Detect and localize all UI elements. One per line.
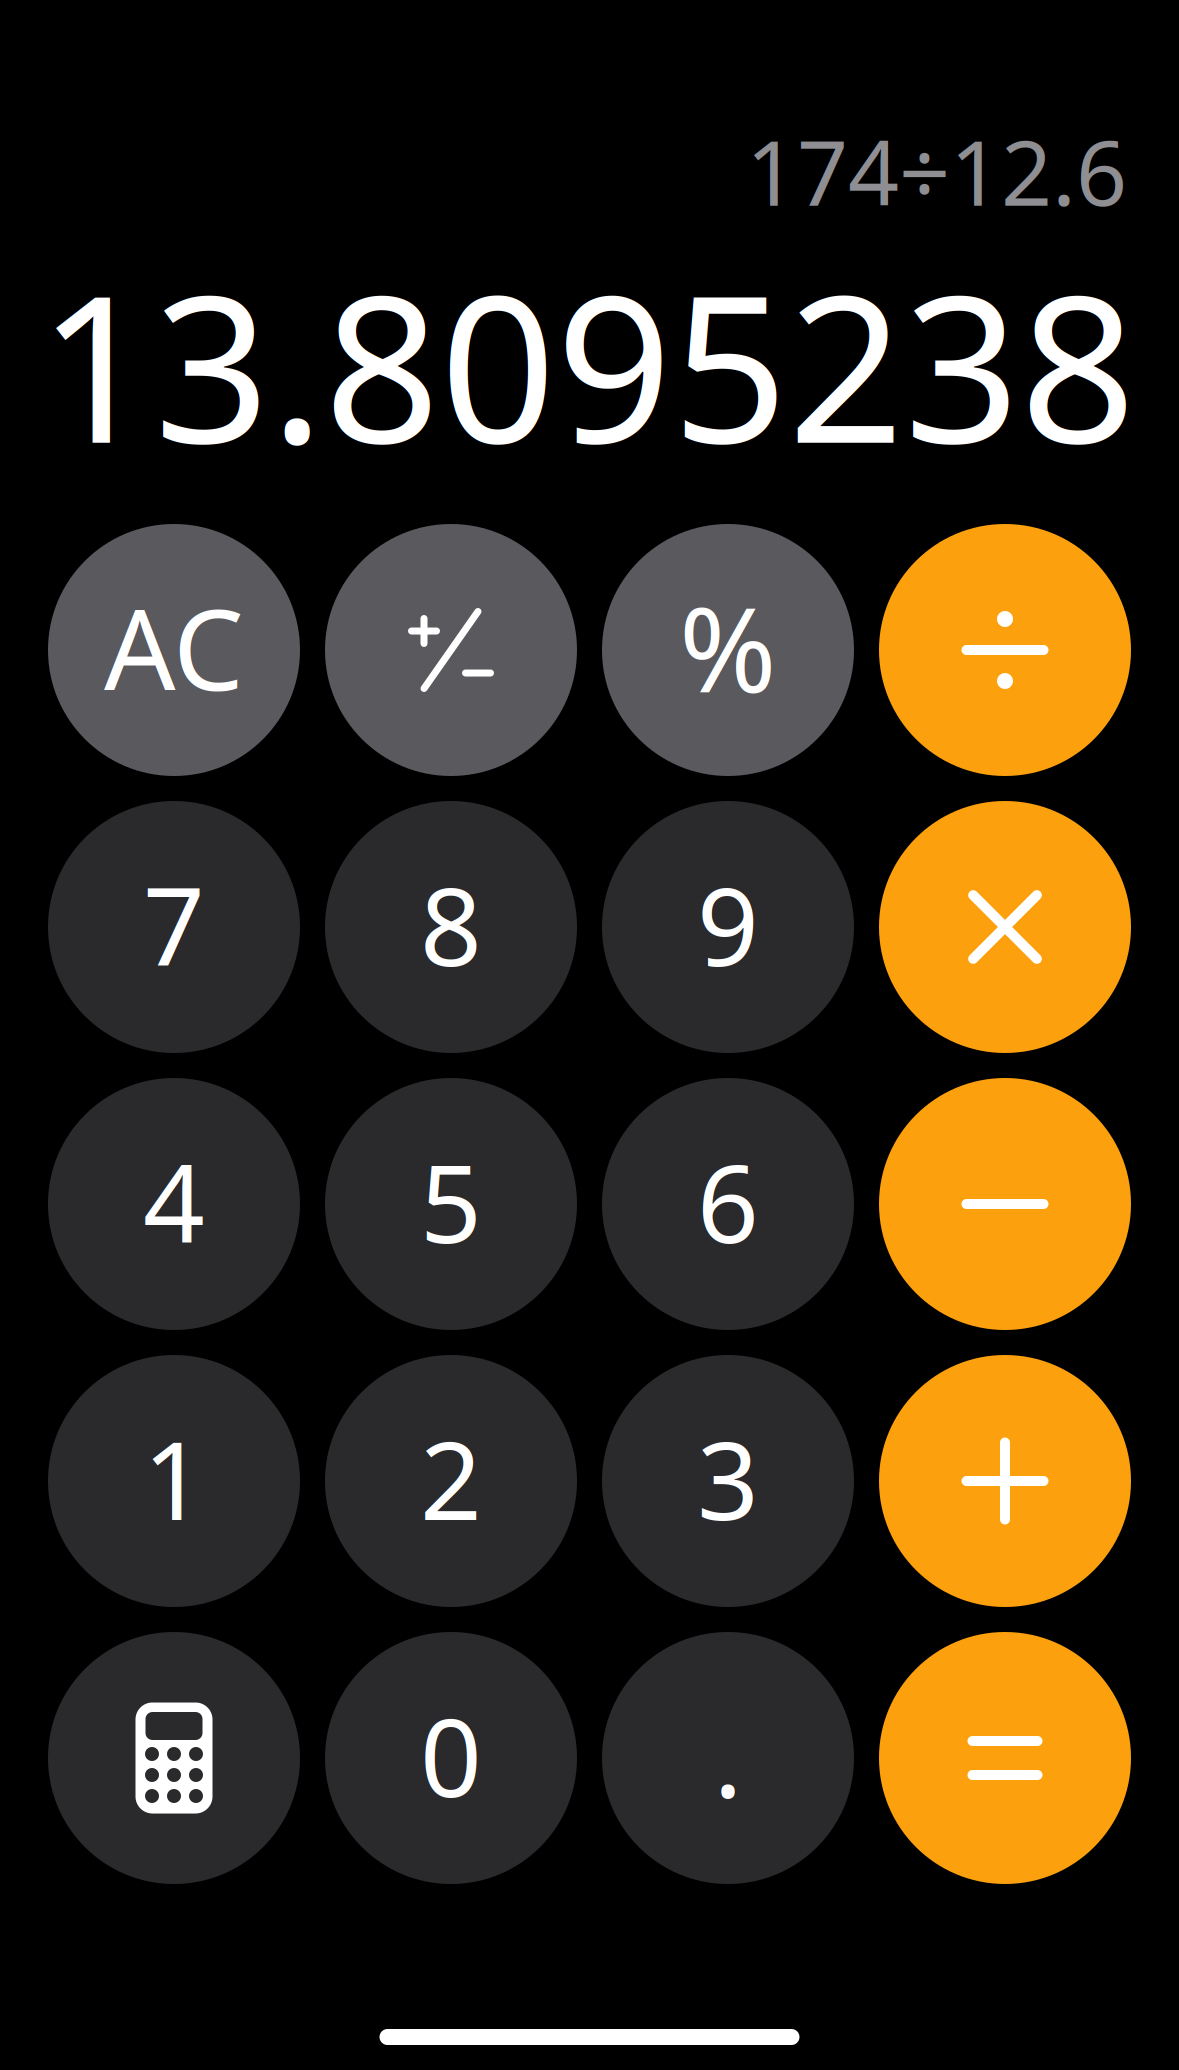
staticText: 13.8095238 bbox=[38, 229, 1136, 498]
staticText: 1 bbox=[143, 1406, 205, 1550]
button[interactable]: Subtract bbox=[879, 1078, 1131, 1330]
button[interactable]: 2 bbox=[325, 1355, 577, 1607]
staticText: % bbox=[679, 569, 777, 725]
button[interactable]: Equals bbox=[879, 1632, 1131, 1884]
button[interactable]: Add bbox=[879, 1355, 1131, 1607]
button[interactable]: 0 bbox=[325, 1632, 577, 1884]
button[interactable]: Switch calculator bbox=[48, 1632, 300, 1884]
button[interactable]: Multiply bbox=[879, 801, 1131, 1053]
button[interactable]: 4 bbox=[48, 1078, 300, 1330]
button[interactable]: Toggle sign bbox=[325, 524, 577, 776]
button[interactable]: 5 bbox=[325, 1078, 577, 1330]
button[interactable]: 1 bbox=[48, 1355, 300, 1607]
button[interactable]: Percent bbox=[602, 524, 854, 776]
staticText: 5 bbox=[420, 1129, 482, 1273]
staticText: 3 bbox=[697, 1406, 759, 1550]
button[interactable]: 7 bbox=[48, 801, 300, 1053]
staticText: 9 bbox=[697, 852, 759, 996]
staticText: AC bbox=[104, 573, 244, 721]
staticText: 0 bbox=[420, 1683, 482, 1827]
staticText: 6 bbox=[697, 1129, 759, 1273]
staticText: 8 bbox=[420, 852, 482, 996]
button[interactable]: Decimal point bbox=[602, 1632, 854, 1884]
staticText: 4 bbox=[143, 1129, 205, 1273]
button[interactable]: 6 bbox=[602, 1078, 854, 1330]
staticText: 2 bbox=[420, 1406, 482, 1550]
button[interactable]: Divide bbox=[879, 524, 1131, 776]
staticText: 174÷12.6 bbox=[746, 112, 1127, 230]
button[interactable]: 8 bbox=[325, 801, 577, 1053]
staticText: 7 bbox=[143, 852, 205, 996]
button[interactable]: 3 bbox=[602, 1355, 854, 1607]
button[interactable]: 9 bbox=[602, 801, 854, 1053]
button[interactable]: All clear bbox=[48, 524, 300, 776]
staticText: . bbox=[713, 1683, 742, 1827]
